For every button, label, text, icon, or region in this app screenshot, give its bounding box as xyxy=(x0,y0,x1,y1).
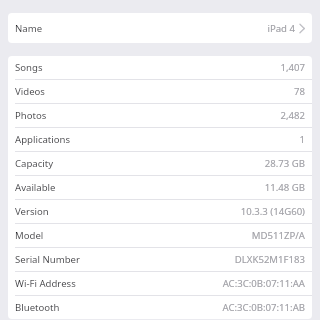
staticText: Videos xyxy=(15,85,45,98)
button[interactable]: Applications xyxy=(8,128,312,151)
button[interactable]: Serial Number xyxy=(8,248,312,271)
button[interactable]: Name xyxy=(8,13,312,43)
staticText: Version xyxy=(15,205,49,218)
staticText: Capacity xyxy=(15,157,54,170)
staticText: DLXK52M1F183 xyxy=(234,253,305,266)
button[interactable]: Photos xyxy=(8,104,312,127)
staticText: Songs xyxy=(15,61,43,74)
staticText: Model xyxy=(15,229,44,242)
button[interactable]: Version xyxy=(8,200,312,223)
button[interactable]: Model xyxy=(8,224,312,247)
staticText: 11.48 GB xyxy=(264,181,305,194)
staticText: 1,407 xyxy=(280,61,305,74)
staticText: AC:3C:0B:07:11:AB xyxy=(222,301,305,314)
staticText: Photos xyxy=(15,109,47,122)
button[interactable]: Songs xyxy=(8,56,312,79)
staticText: Applications xyxy=(15,133,71,146)
staticText: Serial Number xyxy=(15,253,80,266)
button[interactable]: Videos xyxy=(8,80,312,103)
button[interactable]: Wi-Fi Address xyxy=(8,272,312,295)
staticText: 1 xyxy=(299,133,305,146)
staticText: Name xyxy=(15,22,43,35)
other: Edit device name xyxy=(299,23,305,34)
staticText: iPad 4 xyxy=(267,22,295,35)
staticText: AC:3C:0B:07:11:AA xyxy=(222,277,305,290)
staticText: 78 xyxy=(294,85,305,98)
staticText: 2,482 xyxy=(280,109,305,122)
staticText: MD511ZP/A xyxy=(251,229,305,242)
button[interactable]: Available xyxy=(8,176,312,199)
staticText: Available xyxy=(15,181,56,194)
staticText: Bluetooth xyxy=(15,301,60,314)
button[interactable]: Capacity xyxy=(8,152,312,175)
staticText: Wi-Fi Address xyxy=(15,277,76,290)
staticText: 10.3.3 (14G60) xyxy=(240,205,305,218)
button[interactable]: Bluetooth xyxy=(8,296,312,319)
staticText: 28.73 GB xyxy=(264,157,305,170)
